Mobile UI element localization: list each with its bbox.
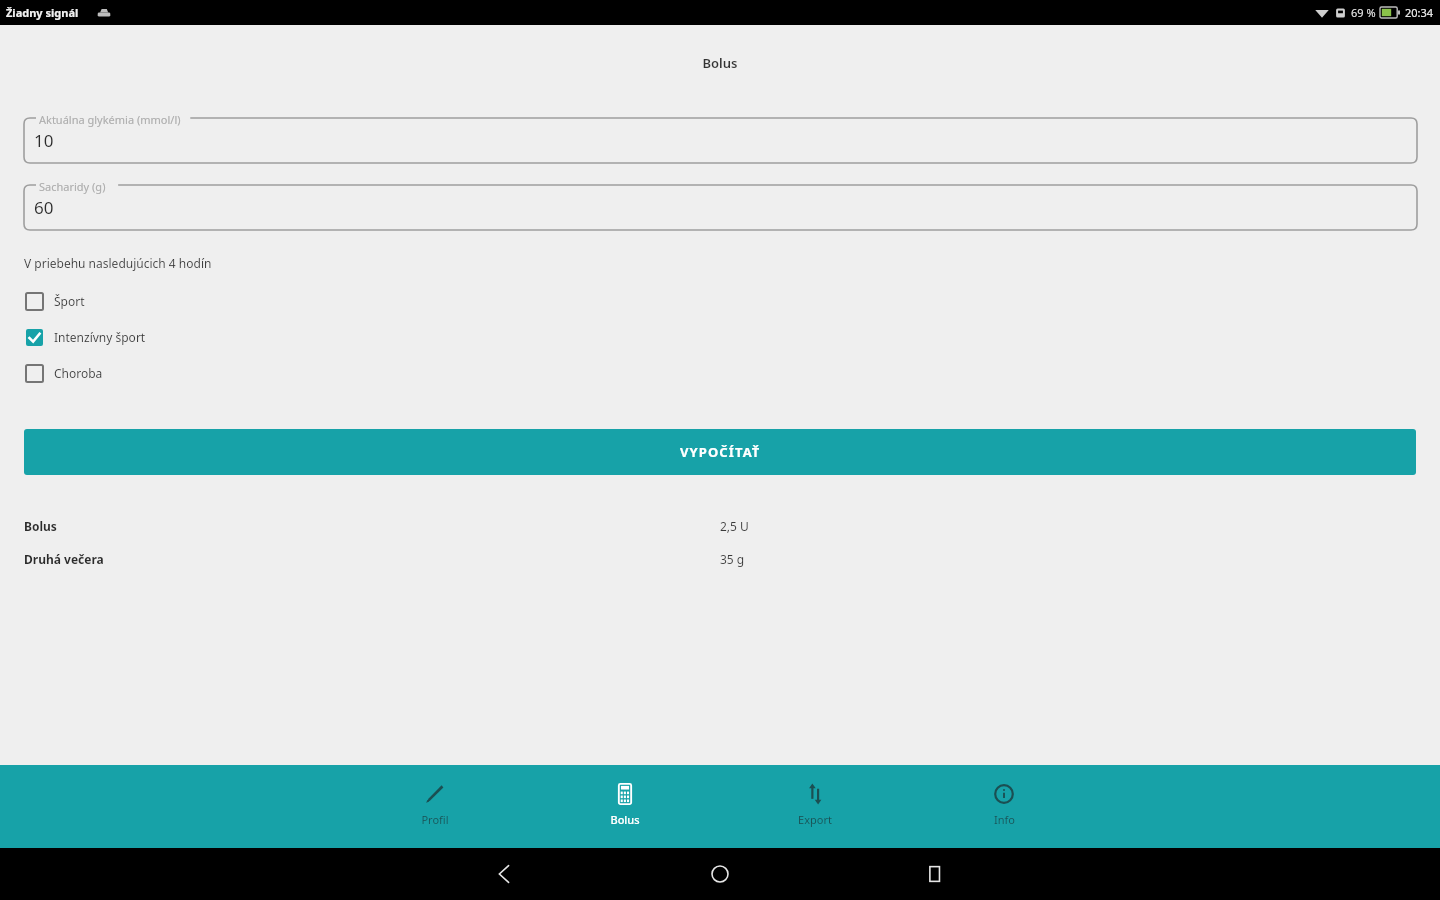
staticText: Žiadny signál	[6, 5, 79, 20]
staticText: 20:34	[1405, 5, 1434, 20]
staticText: 2,5 U	[720, 518, 749, 534]
button[interactable]: Profil	[395, 783, 475, 835]
button[interactable]: Bolus	[585, 783, 665, 835]
button[interactable]: Back	[483, 852, 527, 896]
staticText: Choroba	[54, 365, 103, 381]
staticText: VYPOČÍTAŤ	[680, 443, 761, 461]
button[interactable]: Intenzívny šport	[24, 326, 146, 348]
button[interactable]: Export	[775, 783, 855, 835]
staticText: Bolus	[0, 54, 1440, 72]
staticText: V priebehu nasledujúcich 4 hodín	[24, 255, 212, 271]
staticText: 60	[34, 196, 54, 219]
staticText: Druhá večera	[24, 551, 104, 567]
button[interactable]: Info	[964, 783, 1044, 835]
button[interactable]: Recent apps	[913, 852, 957, 896]
staticText: Intenzívny šport	[54, 329, 146, 345]
staticText: 69 %	[1351, 5, 1376, 20]
staticText: 10	[34, 129, 54, 152]
staticText: Šport	[54, 293, 85, 309]
button[interactable]: Choroba	[24, 362, 103, 384]
staticText: Info	[994, 812, 1015, 827]
staticText: Aktuálna glykémia (mmol/l)	[39, 112, 181, 127]
button[interactable]: Sacharidy (g)	[24, 185, 1417, 230]
staticText: Profil	[421, 812, 449, 827]
button[interactable]: Šport	[24, 290, 85, 312]
button[interactable]: VYPOČÍTAŤ	[24, 429, 1416, 475]
staticText: Bolus	[610, 812, 640, 827]
button[interactable]: Home	[698, 852, 742, 896]
staticText: Bolus	[24, 518, 57, 534]
staticText: Sacharidy (g)	[39, 179, 106, 194]
staticText: 35 g	[720, 551, 745, 567]
button[interactable]: Aktuálna glykémia (mmol/l)	[24, 118, 1417, 163]
staticText: Export	[798, 812, 832, 827]
